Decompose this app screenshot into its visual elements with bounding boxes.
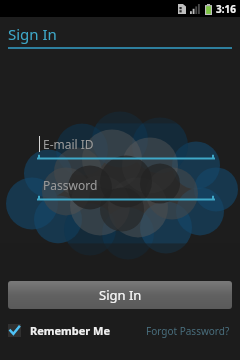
staticText: Password <box>43 177 98 193</box>
staticText: Sign In <box>99 286 142 304</box>
staticText: 3:16 <box>216 2 236 16</box>
button[interactable]: Remember Me <box>8 323 111 338</box>
staticText: Sign In <box>8 24 57 44</box>
button[interactable]: E-mail ID <box>38 135 214 160</box>
button[interactable]: Sign In <box>8 281 232 309</box>
staticText: E-mail ID <box>43 136 94 152</box>
button[interactable]: Forgot Password? <box>146 324 230 338</box>
button[interactable]: Password <box>38 176 214 201</box>
staticText: Remember Me <box>30 323 111 338</box>
staticText: Forgot Password? <box>146 324 230 338</box>
